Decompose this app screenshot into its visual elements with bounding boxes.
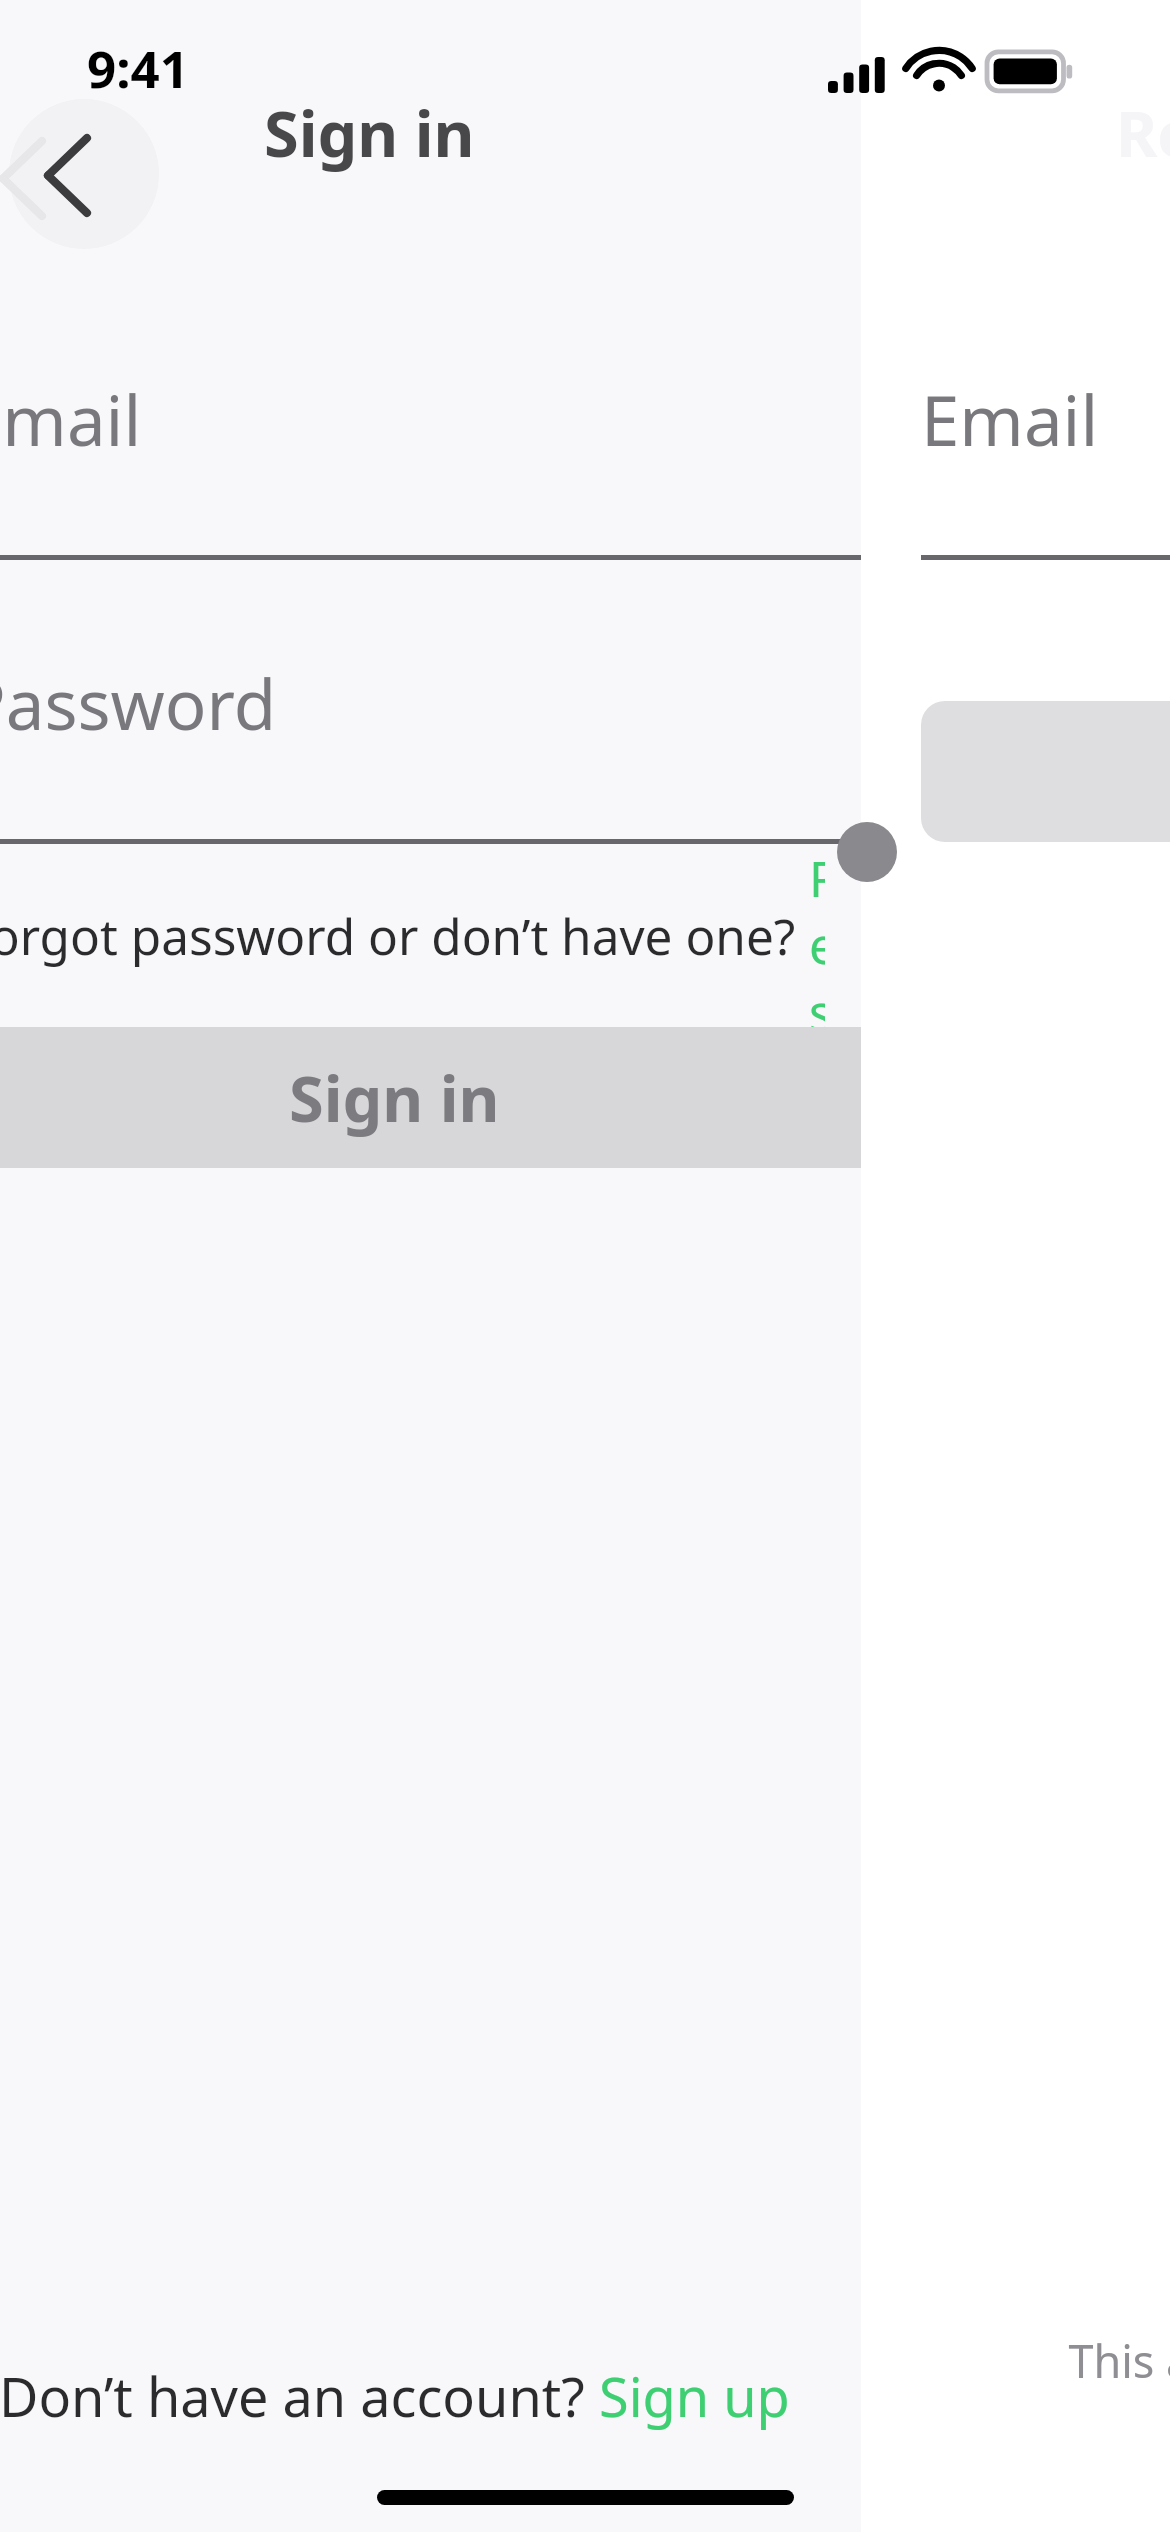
button[interactable]: Back	[9, 99, 159, 249]
staticText: Sign in	[289, 1055, 500, 1141]
button[interactable]: Sign in	[0, 1027, 861, 1168]
staticText: Forgot password or don’t have one?	[0, 902, 809, 969]
staticText: Password	[0, 656, 277, 750]
staticText: Email	[0, 372, 142, 466]
staticText: This app is protected by reCAPTCHA	[1068, 2330, 1170, 2391]
button[interactable]: Don’t have an account?	[0, 2359, 790, 2433]
staticText: Email	[921, 372, 1099, 466]
staticText: Don’t have an account?	[0, 2359, 599, 2433]
staticText: Sign in	[264, 90, 475, 176]
button[interactable]: Reset password	[809, 844, 825, 1027]
staticText: Reset password	[809, 844, 825, 1027]
staticText: Reset password	[1116, 90, 1170, 176]
staticText: 9:41	[87, 33, 189, 102]
staticText: Sign up	[599, 2359, 790, 2433]
